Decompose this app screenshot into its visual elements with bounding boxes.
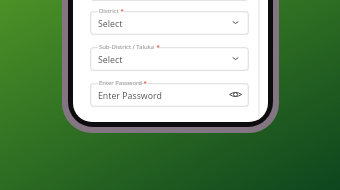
staticText: Sub-District / Taluka — [99, 43, 155, 51]
staticText: Enter Password — [99, 79, 142, 87]
button[interactable]: Sub-District / Taluka — [90, 47, 249, 71]
button[interactable]: Show password — [229, 88, 242, 101]
button[interactable]: Open dropdown — [229, 52, 242, 65]
staticText: * — [119, 7, 124, 15]
button[interactable]: Enter Password — [90, 83, 249, 107]
staticText: * — [155, 43, 160, 51]
staticText: * — [142, 79, 147, 87]
staticText: Enter Password — [98, 90, 162, 102]
staticText: Select — [98, 18, 123, 30]
staticText: District — [99, 7, 119, 15]
button[interactable]: District — [90, 11, 249, 35]
button[interactable]: State — [90, 0, 249, 1]
button[interactable]: Open dropdown — [229, 16, 242, 29]
staticText: Select — [98, 54, 123, 66]
